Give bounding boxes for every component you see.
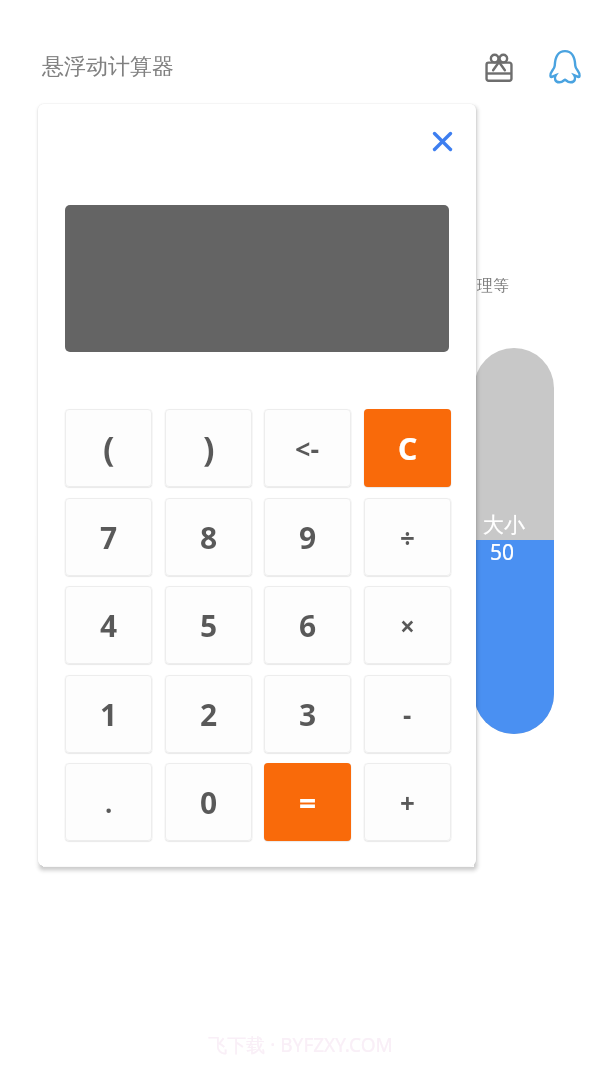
staticText: . [105,785,113,820]
button[interactable]: ( [65,409,152,487]
button[interactable]: Close [414,113,470,169]
staticText: 50 [490,538,515,567]
staticText: 5 [200,605,218,646]
button[interactable]: - [364,675,451,753]
staticText: C [398,428,418,469]
staticText: = [299,782,317,823]
staticText: <- [295,430,320,467]
button[interactable]: C [364,409,451,487]
button[interactable]: 9 [264,498,351,576]
staticText: 2 [200,694,218,735]
button[interactable]: 4 [65,586,152,664]
button[interactable]: QQ [537,39,593,95]
button[interactable]: × [364,586,451,664]
staticText: + [400,785,415,820]
button[interactable]: 7 [65,498,152,576]
button[interactable]: = [264,763,351,841]
staticText: - [403,697,412,732]
button[interactable]: 0 [165,763,252,841]
button[interactable]: 8 [165,498,252,576]
staticText: ( [103,425,115,471]
button[interactable]: 3 [264,675,351,753]
button[interactable]: + [364,763,451,841]
staticText: 7 [100,517,118,558]
staticText: 9 [299,517,317,558]
button[interactable]: Size slider [474,348,554,734]
staticText: × [400,608,415,643]
button[interactable]: <- [264,409,351,487]
staticText: 飞下载 · BYFZXY.COM [208,1032,393,1058]
staticText: 大小 [483,512,525,538]
button[interactable]: 2 [165,675,252,753]
staticText: 0 [200,782,218,823]
staticText: 4 [100,605,118,646]
staticText: 6 [299,605,317,646]
button[interactable]: ) [165,409,252,487]
staticText: ÷ [400,520,415,555]
button[interactable]: Gift [471,39,527,95]
staticText: 3 [299,694,317,735]
staticText: 悬浮动计算器 [42,53,174,81]
staticText: 8 [200,517,218,558]
button[interactable]: 5 [165,586,252,664]
button[interactable]: ÷ [364,498,451,576]
button[interactable]: 6 [264,586,351,664]
button[interactable]: . [65,763,152,841]
button[interactable]: 1 [65,675,152,753]
staticText: 理等 [477,276,509,296]
staticText: 1 [100,694,118,735]
staticText: ) [203,425,215,471]
